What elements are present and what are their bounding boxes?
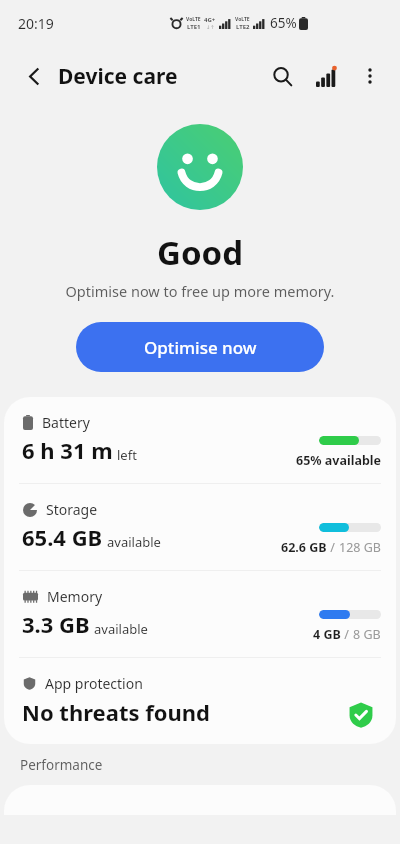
staticText: / xyxy=(341,626,353,643)
staticText: No threats found xyxy=(22,697,210,727)
button[interactable]: Back xyxy=(12,54,56,98)
button[interactable]: More options xyxy=(348,54,392,98)
staticText: Memory xyxy=(47,587,103,606)
staticText: 20:19 xyxy=(18,14,54,33)
staticText: 4 GB xyxy=(313,626,341,643)
button[interactable]: Optimise now xyxy=(76,322,324,372)
staticText: Optimise now xyxy=(144,336,257,359)
staticText: Storage xyxy=(46,500,98,519)
staticText: available xyxy=(94,620,148,638)
staticText: available xyxy=(107,533,161,551)
staticText: 65% xyxy=(270,14,297,32)
staticText: Device care xyxy=(58,62,178,91)
staticText: VoLTE xyxy=(186,16,201,23)
staticText: Optimise now to free up more memory. xyxy=(0,281,400,301)
staticText: 65% available xyxy=(296,452,381,469)
button[interactable]: Search xyxy=(260,54,304,98)
staticText: VoLTE xyxy=(235,16,250,23)
staticText: LTE1 xyxy=(187,23,201,31)
staticText: 3.3 GB xyxy=(22,609,90,639)
staticText: 8 GB xyxy=(353,626,381,643)
staticText: Battery xyxy=(42,413,90,432)
staticText: LTE2 xyxy=(236,23,250,31)
button[interactable]: Storage xyxy=(4,484,396,570)
staticText: 62.6 GB xyxy=(281,539,327,556)
staticText: Performance xyxy=(20,756,103,774)
button[interactable]: Usage statistics xyxy=(304,54,348,98)
staticText: 4G+ xyxy=(204,16,216,24)
staticText: ↓↑ xyxy=(206,24,215,30)
staticText: 65.4 GB xyxy=(22,522,103,552)
staticText: left xyxy=(117,446,137,464)
button[interactable]: Battery xyxy=(4,397,396,483)
staticText: / xyxy=(327,539,339,556)
staticText: Good xyxy=(0,230,400,275)
staticText: App protection xyxy=(45,674,143,693)
button[interactable]: Memory xyxy=(4,571,396,657)
button[interactable]: App protection xyxy=(4,658,396,744)
staticText: 128 GB xyxy=(339,539,381,556)
staticText: 6 h 31 m xyxy=(22,435,113,465)
